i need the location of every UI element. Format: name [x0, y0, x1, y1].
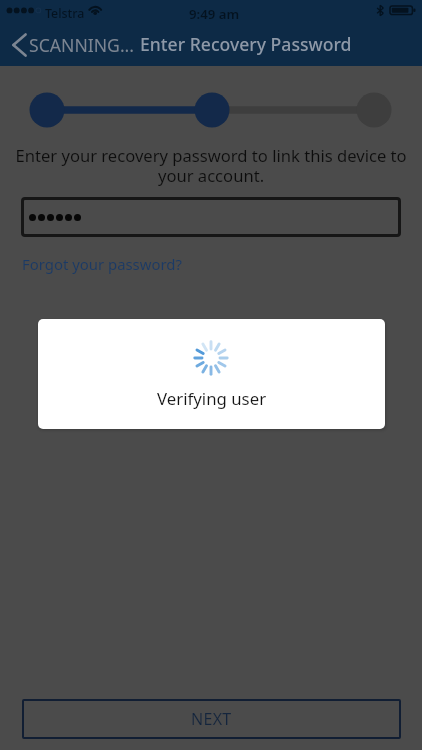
button[interactable]: Forgot your password? [22, 254, 182, 274]
staticText: Enter Recovery Password [140, 32, 352, 56]
staticText: Telstra [45, 5, 85, 22]
staticText: NEXT [191, 708, 232, 730]
button[interactable]: NEXT [22, 699, 401, 739]
staticText: Enter your recovery password to link thi… [8, 144, 414, 187]
button[interactable] [21, 197, 401, 237]
staticText: SCANNING... [29, 33, 135, 57]
staticText: Verifying user [157, 387, 267, 410]
staticText: 9:49 am [189, 5, 240, 23]
other: Back [11, 32, 28, 58]
button[interactable]: Back [11, 32, 135, 58]
